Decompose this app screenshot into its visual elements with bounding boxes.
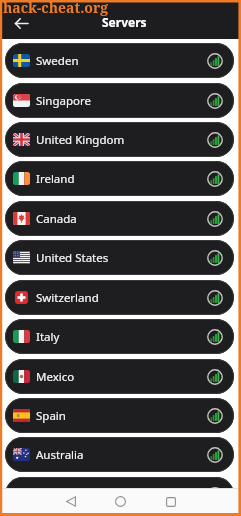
button[interactable]: Spain <box>5 398 234 433</box>
staticText: Mexico <box>36 369 75 385</box>
staticText: United States <box>36 250 109 266</box>
button[interactable]: Ireland <box>5 161 234 196</box>
button[interactable]: Singapore <box>5 83 234 118</box>
button[interactable]: Australia <box>5 437 234 472</box>
button[interactable]: Canada <box>5 201 234 236</box>
button[interactable]: New Zealand <box>5 477 234 512</box>
staticText: United Kingdom <box>36 132 125 148</box>
button[interactable]: United States <box>5 240 234 275</box>
staticText: Spain <box>36 408 66 424</box>
staticText: Australia <box>36 447 84 463</box>
button[interactable] <box>10 14 32 32</box>
button[interactable]: United Kingdom <box>5 122 234 157</box>
staticText: hack-cheat.org <box>3 0 109 17</box>
staticText: Canada <box>36 211 77 227</box>
button[interactable]: Mexico <box>5 359 234 394</box>
button[interactable]: Switzerland <box>5 280 234 315</box>
staticText: Singapore <box>36 93 91 109</box>
staticText: Switzerland <box>36 290 99 306</box>
button[interactable] <box>159 489 183 514</box>
staticText: New Zealand <box>36 487 107 503</box>
staticText: Italy <box>36 329 60 345</box>
button[interactable]: Italy <box>5 319 234 354</box>
button[interactable] <box>59 489 83 514</box>
staticText: Sweden <box>36 53 79 69</box>
button[interactable] <box>108 489 132 514</box>
button[interactable]: Sweden <box>5 43 234 78</box>
staticText: Servers <box>102 14 147 30</box>
staticText: Ireland <box>36 171 75 187</box>
